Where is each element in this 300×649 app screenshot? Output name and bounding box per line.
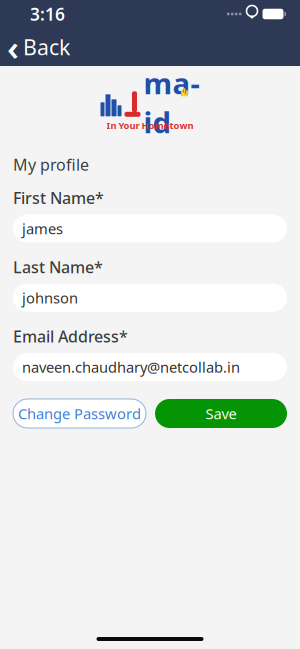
staticText: Save <box>205 404 236 423</box>
button[interactable]: james <box>0 214 287 242</box>
staticText: Email Address* <box>13 326 128 347</box>
staticText: ‹ <box>7 24 19 70</box>
button[interactable]: Change Password <box>13 399 146 428</box>
button[interactable]: naveen.chaudhary@netcollab.in <box>0 353 287 381</box>
button[interactable]: johnson <box>0 284 287 312</box>
staticText: naveen.chaudhary@netcollab.in <box>22 357 240 377</box>
staticText: Change Password <box>18 404 141 423</box>
staticText: johnson <box>22 288 78 307</box>
staticText: Back <box>23 33 70 61</box>
staticText: My profile <box>13 154 89 175</box>
button[interactable]: Save <box>155 399 287 428</box>
staticText: First Name* <box>13 187 104 208</box>
staticText: 3:16 <box>30 2 65 25</box>
button[interactable]: ‹ <box>0 28 80 66</box>
staticText: maid <box>143 63 199 141</box>
staticText: In Your Hometown <box>106 119 193 132</box>
staticText: james <box>22 219 63 238</box>
staticText: Last Name* <box>13 256 103 278</box>
